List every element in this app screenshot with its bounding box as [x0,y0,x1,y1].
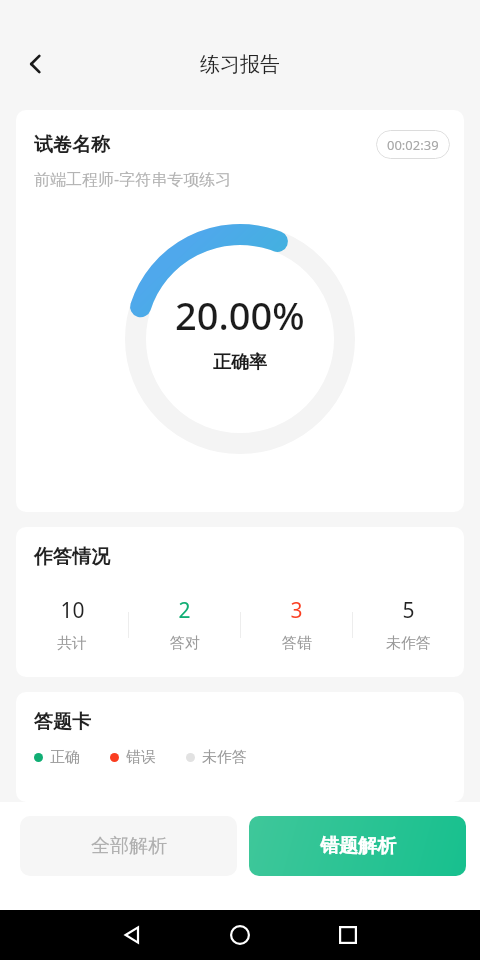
button[interactable]: Back [10,38,62,90]
button[interactable]: 全部解析 [20,816,237,876]
staticText: 答对 [170,634,200,653]
staticText: 练习报告 [200,52,280,77]
staticText: 正确率 [213,351,267,374]
staticText: 10 [60,596,85,625]
button[interactable]: 5 [353,596,464,653]
staticText: 20.00% [175,289,305,341]
staticText: 00:02:39 [387,136,439,154]
staticText: 3 [290,596,303,625]
staticText: 未作答 [386,634,431,653]
staticText: 作答情况 [34,545,110,569]
staticText: 前端工程师-字符串专项练习 [34,168,232,190]
button[interactable]: Home [216,911,264,959]
staticText: 试卷名称 [34,133,110,157]
button[interactable]: 2 [129,596,240,653]
staticText: 正确 [50,748,80,767]
staticText: 未作答 [202,748,247,767]
button[interactable]: Recents [324,911,372,959]
button[interactable]: 错题解析 [249,816,466,876]
staticText: 答错 [282,634,312,653]
staticText: 错误 [126,748,156,767]
staticText: 2 [178,596,191,625]
staticText: 错题解析 [320,834,396,858]
staticText: 5 [402,596,415,625]
staticText: 共计 [57,634,87,653]
button[interactable]: Back [108,911,156,959]
button[interactable]: 3 [241,596,352,653]
button[interactable]: 10 [16,596,128,653]
staticText: 全部解析 [91,834,167,858]
staticText: 答题卡 [34,710,91,734]
